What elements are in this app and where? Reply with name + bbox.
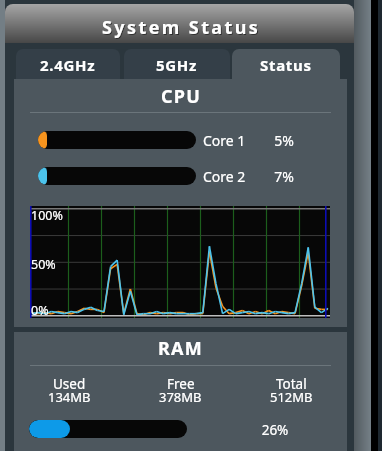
staticText: Used <box>53 375 86 393</box>
staticText: 134MB <box>48 388 91 406</box>
button[interactable]: Core 2 <box>14 167 347 185</box>
button[interactable]: Used <box>14 375 125 411</box>
staticText: 0% <box>31 302 49 319</box>
staticText: Free <box>167 375 195 393</box>
button[interactable]: Total <box>236 375 347 411</box>
button[interactable]: System Status <box>5 4 354 43</box>
staticText: System Status <box>103 16 262 41</box>
staticText: 378MB <box>159 388 202 406</box>
button[interactable]: 2.4GHz <box>16 49 120 80</box>
staticText: 7% <box>264 167 304 185</box>
button[interactable]: Status <box>232 49 340 80</box>
staticText: 26% <box>247 421 303 439</box>
staticText: 2.4GHz <box>40 55 96 75</box>
button[interactable]: Core 1 <box>14 131 347 149</box>
staticText: 50% <box>31 256 56 273</box>
staticText: 5GHz <box>156 55 198 75</box>
button[interactable]: Free <box>125 375 236 411</box>
staticText: System Status <box>102 15 261 40</box>
staticText: Status <box>260 55 312 75</box>
staticText: 5% <box>264 131 304 149</box>
staticText: Core 2 <box>203 167 246 185</box>
button[interactable]: 5GHz <box>124 49 230 80</box>
staticText: Core 1 <box>203 131 246 149</box>
button[interactable] <box>29 420 187 438</box>
staticText: 512MB <box>270 388 313 406</box>
staticText: RAM <box>158 336 203 361</box>
staticText: CPU <box>161 84 201 109</box>
staticText: Total <box>276 375 307 393</box>
staticText: 100% <box>31 207 63 224</box>
